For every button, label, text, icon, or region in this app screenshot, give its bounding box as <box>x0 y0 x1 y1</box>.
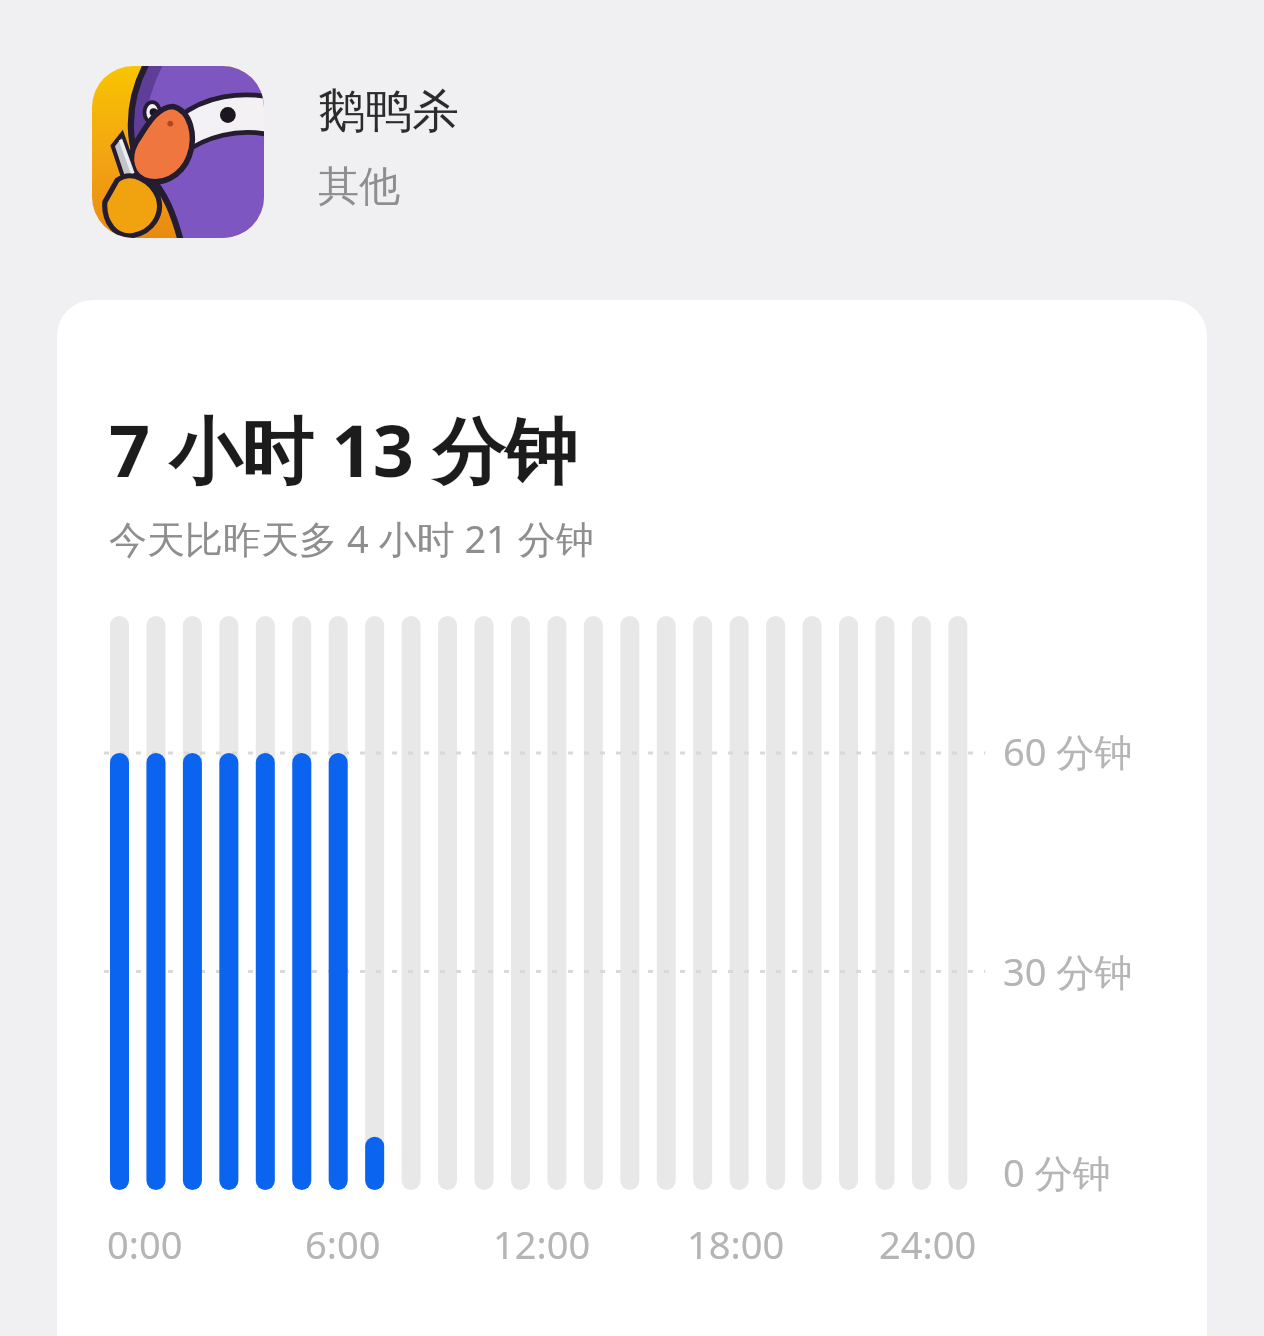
button[interactable]: 鹅鸭杀 应用图标 <box>0 66 1264 238</box>
staticText: 7 小时 13 分钟 <box>109 400 577 498</box>
button[interactable]: 鹅鸭杀 应用图标 <box>92 66 264 238</box>
staticText: 6:00 <box>305 1218 381 1270</box>
staticText: 0 分钟 <box>1003 1146 1111 1198</box>
staticText: 其他 <box>318 161 400 213</box>
staticText: 30 分钟 <box>1003 945 1133 997</box>
staticText: 鹅鸭杀 <box>318 82 459 141</box>
staticText: 今天比昨天多 4 小时 21 分钟 <box>109 512 594 564</box>
staticText: 24:00 <box>879 1218 977 1270</box>
staticText: 60 分钟 <box>1003 725 1133 777</box>
staticText: 0:00 <box>107 1218 183 1270</box>
staticText: 12:00 <box>493 1218 591 1270</box>
button[interactable]: 7 小时 13 分钟 <box>57 300 1207 1336</box>
staticText: 18:00 <box>687 1218 785 1270</box>
